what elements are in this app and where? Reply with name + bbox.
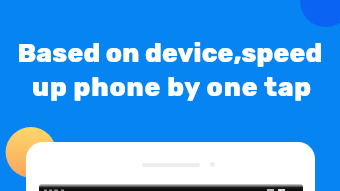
button[interactable]	[26, 142, 315, 191]
staticText: Based on device,speed	[0, 38, 340, 69]
staticText: up phone by one tap	[2, 72, 340, 103]
